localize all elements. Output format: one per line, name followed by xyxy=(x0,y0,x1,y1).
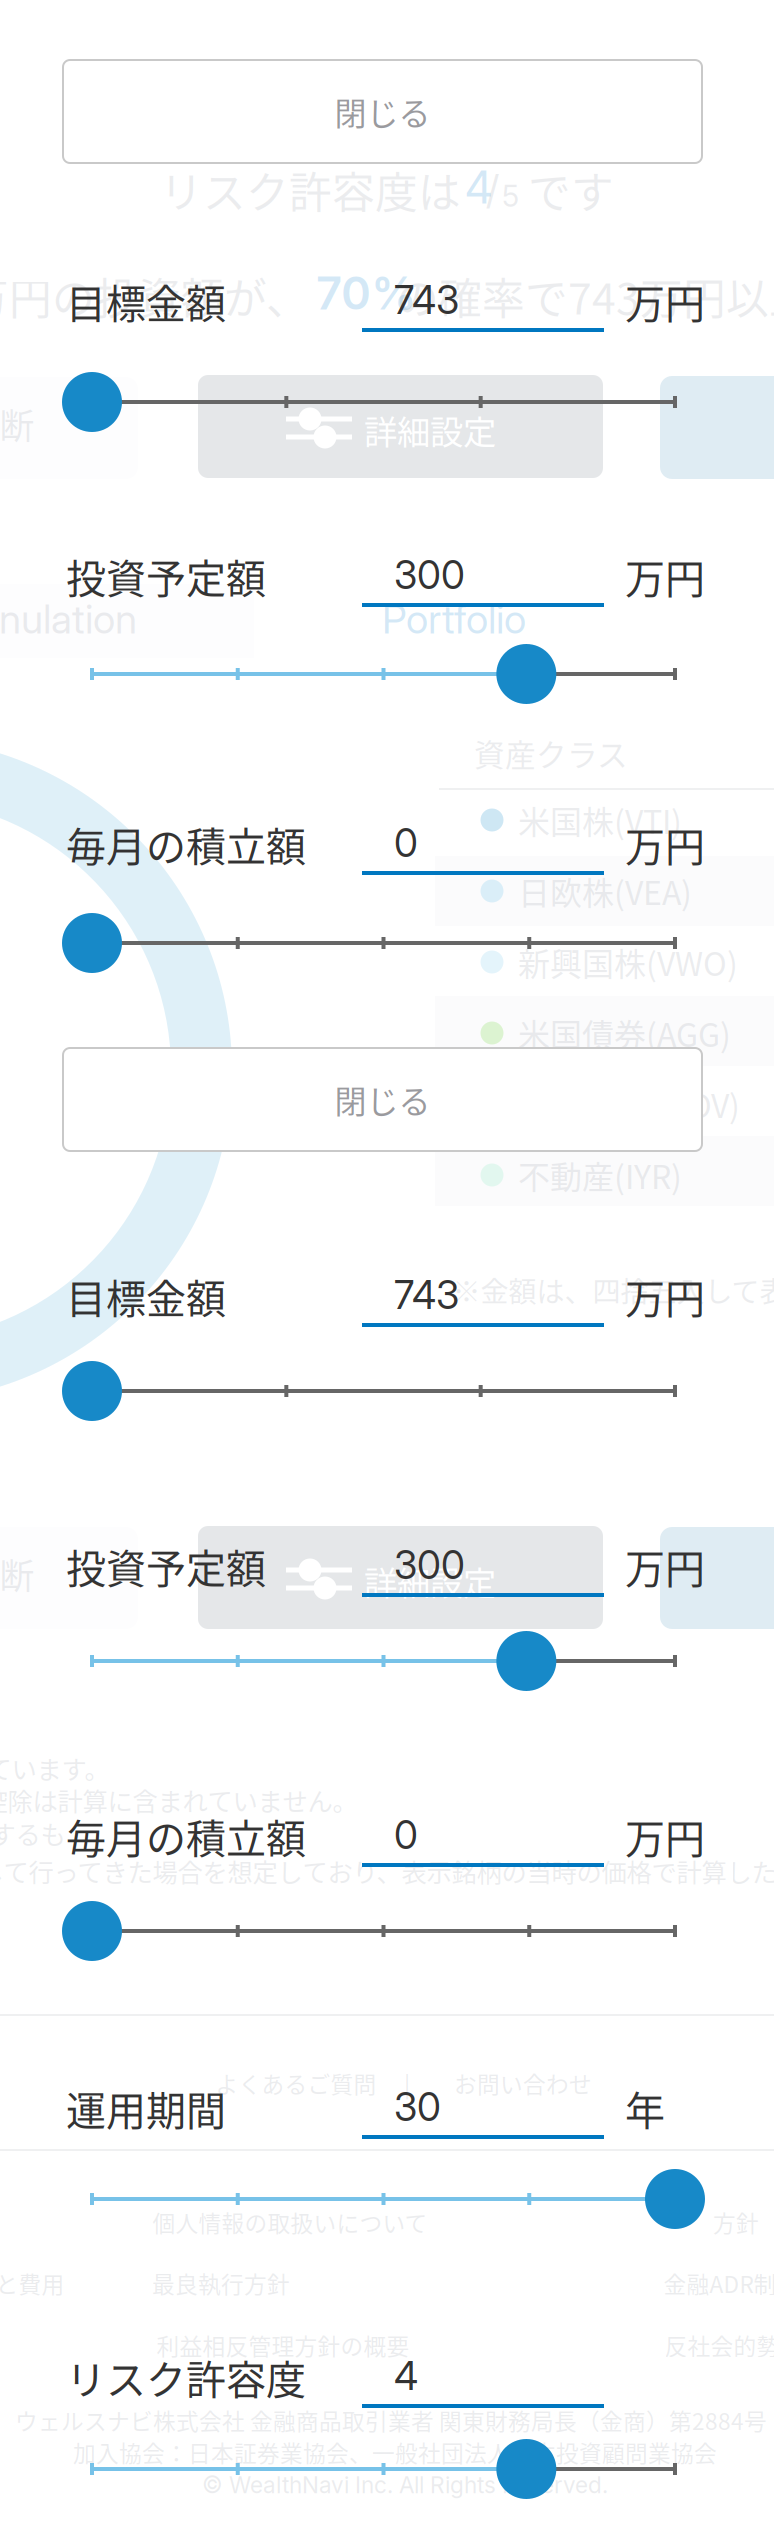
staticText: 0 xyxy=(394,1812,418,1858)
staticText: 万円 xyxy=(625,272,705,330)
staticText: 0 xyxy=(394,820,418,866)
staticText: 閉じる xyxy=(334,1076,430,1123)
staticText: の確率で743万円以上 xyxy=(396,265,774,327)
staticText: © WealthNavi Inc. All Rights Reserved. xyxy=(202,2471,608,2499)
staticText: 300 xyxy=(394,1542,465,1588)
staticText: 万円 xyxy=(625,547,705,605)
staticText: 米国債券(AGG) xyxy=(518,1010,731,1056)
button[interactable]: 閉じる xyxy=(63,60,702,163)
staticText: 投資予定額 xyxy=(66,547,266,605)
staticText: 投資予定額 xyxy=(66,1537,266,1595)
staticText: 断 xyxy=(0,1549,34,1599)
staticText: よくあるご質問 xyxy=(215,2067,376,2099)
staticText: 資産クラス xyxy=(474,731,628,775)
staticText: 最良執行方針 xyxy=(152,2267,290,2299)
staticText: 4 xyxy=(394,2353,418,2399)
button[interactable]: 閉じる xyxy=(63,1048,702,1151)
staticText: 加入協会：日本証券業協会、一般社団法人日本投資顧問業協会 xyxy=(73,2436,717,2468)
staticText: 利益相反管理方針の概要 xyxy=(156,2329,409,2361)
staticText: 金融ADR制 xyxy=(663,2267,774,2299)
staticText: 日欧債券(IGOV) xyxy=(518,1081,740,1127)
staticText: 5 xyxy=(502,178,519,214)
staticText: | xyxy=(404,2067,410,2099)
staticText: リスク許容度 xyxy=(66,2348,306,2406)
staticText: 運用期間 xyxy=(66,2079,226,2137)
staticText: 新興国株(VWO) xyxy=(518,939,738,985)
staticText: 万円 xyxy=(625,1537,705,1595)
staticText: 300 xyxy=(394,552,465,598)
staticText: 毎月の積立額 xyxy=(66,815,306,873)
staticText: リスク許容度は xyxy=(160,159,461,221)
staticText: 目標金額 xyxy=(66,272,226,330)
staticText: 4 xyxy=(464,160,493,214)
staticText: 毎月の積立額 xyxy=(66,1807,306,1865)
staticText: 断 xyxy=(0,399,34,449)
staticText: です xyxy=(528,159,614,221)
staticText: 詳細設定 xyxy=(364,1557,496,1605)
staticText: Portfolio xyxy=(382,595,526,643)
staticText: 反社会的勢 xyxy=(664,2329,774,2361)
staticText: と費用 xyxy=(0,2267,64,2299)
staticText: ※金額は、四捨五入して表示し xyxy=(452,1270,774,1310)
staticText: 万円 xyxy=(625,1807,705,1865)
staticText: 743 xyxy=(394,277,459,323)
staticText: するも xyxy=(0,1815,65,1851)
staticText: 方針 xyxy=(713,2206,759,2238)
staticText: / xyxy=(486,166,499,214)
staticText: ウェルスナビ株式会社 金融商品取引業者 関東財務局長（金商）第2884号 xyxy=(15,2404,767,2436)
staticText: 個人情報の取扱いについて xyxy=(152,2206,427,2238)
staticText: nulation xyxy=(0,595,137,643)
staticText: 目標金額 xyxy=(66,1267,226,1325)
staticText: 控除は計算に含まれていません。 xyxy=(0,1782,357,1818)
staticText: して行ってきた場合を想定しており、表示銘柄の当時の価格で計算した金 xyxy=(0,1853,774,1889)
staticText: ています。 xyxy=(0,1750,109,1786)
staticText: 万円 xyxy=(625,1267,705,1325)
staticText: 日欧株(VEA) xyxy=(518,868,692,914)
staticText: 米国株(VTI) xyxy=(518,797,682,843)
staticText: 743 xyxy=(394,1272,459,1318)
staticText: 詳細設定 xyxy=(364,406,496,454)
staticText: 年 xyxy=(625,2079,665,2137)
staticText: 不動産(IYR) xyxy=(518,1152,682,1198)
staticText: 万円 xyxy=(625,815,705,873)
staticText: 30 xyxy=(394,2084,441,2130)
staticText: 70% xyxy=(316,266,417,320)
staticText: お問い合わせ xyxy=(454,2067,592,2099)
staticText: 万円の投資額が、 xyxy=(0,265,309,327)
staticText: 閉じる xyxy=(334,88,430,135)
